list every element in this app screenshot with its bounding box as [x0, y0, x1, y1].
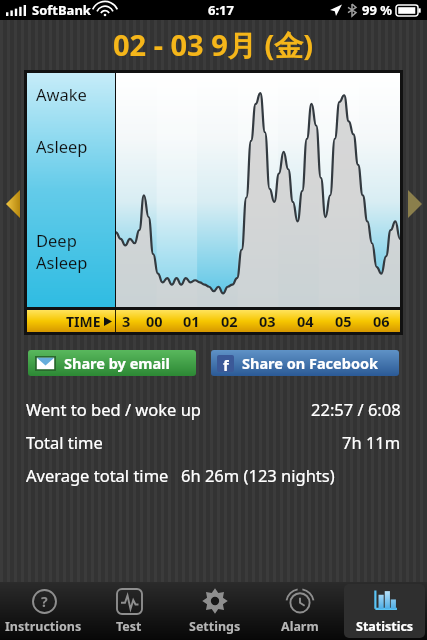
staticText: Test: [116, 618, 142, 635]
button[interactable]: Test: [88, 584, 170, 638]
staticText: Went to bed / woke up: [26, 398, 202, 420]
button[interactable]: ?: [2, 584, 84, 638]
staticText: 06: [373, 311, 390, 331]
staticText: 99 %: [362, 1, 392, 19]
staticText: Alarm: [281, 618, 319, 635]
staticText: Share on Facebook: [242, 353, 379, 373]
staticText: 05: [335, 311, 352, 331]
staticText: Statistics: [356, 618, 414, 635]
staticText: 6:17: [208, 1, 234, 19]
staticText: 00: [146, 311, 163, 331]
button[interactable]: Previous night: [0, 173, 25, 235]
staticText: Asleep: [36, 251, 88, 273]
staticText: Instructions: [5, 618, 82, 635]
button[interactable]: Statistics: [344, 584, 425, 638]
staticText: 03: [259, 311, 276, 331]
staticText: 04: [297, 311, 314, 331]
button[interactable]: Next night: [402, 173, 427, 235]
staticText: Share by email: [64, 353, 170, 373]
button[interactable]: f: [211, 350, 399, 376]
staticText: TIME: [66, 312, 101, 331]
button[interactable]: Settings: [174, 584, 255, 638]
staticText: Settings: [189, 618, 241, 635]
staticText: Asleep: [36, 135, 88, 157]
staticText: Average total time: [26, 464, 169, 486]
staticText: Awake: [36, 83, 87, 105]
staticText: 02 - 03 9月 (金): [113, 25, 314, 65]
staticText: 7h 11m: [342, 431, 401, 453]
staticText: ?: [41, 592, 48, 611]
staticText: f: [223, 355, 229, 372]
button[interactable]: Share by email: [28, 350, 196, 376]
staticText: 3: [122, 311, 131, 331]
staticText: 22:57 / 6:08: [311, 398, 401, 420]
button[interactable]: Alarm: [259, 584, 340, 638]
staticText: 02: [221, 311, 238, 331]
staticText: 01: [183, 311, 200, 331]
staticText: SoftBank: [32, 1, 91, 19]
staticText: Deep: [36, 229, 77, 251]
staticText: Total time: [26, 431, 103, 453]
staticText: 6h 26m (123 nights): [181, 464, 335, 486]
